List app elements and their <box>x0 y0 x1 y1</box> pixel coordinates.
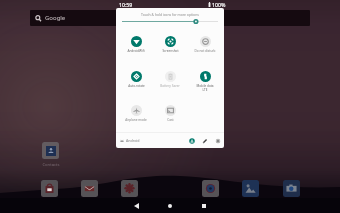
button[interactable]: Recents <box>187 198 221 213</box>
button[interactable]: Airplane mode <box>120 105 152 122</box>
button[interactable]: App <box>242 180 259 197</box>
staticText: AndroidWifi <box>127 49 145 53</box>
button[interactable]: Contacts <box>35 142 66 168</box>
button[interactable]: Home <box>153 198 187 213</box>
staticText: Do not disturb <box>194 49 216 53</box>
staticText: Touch & hold icons for more options <box>116 12 224 17</box>
button[interactable]: Back <box>119 198 153 213</box>
button[interactable]: App <box>81 180 98 197</box>
staticText: Screenshot <box>162 49 179 53</box>
button[interactable]: User <box>187 136 197 146</box>
staticText: 100% <box>212 1 226 8</box>
button[interactable]: Screenshot <box>154 36 186 53</box>
staticText: Contacts <box>42 162 60 168</box>
button[interactable]: Settings <box>213 136 223 146</box>
button[interactable]: Mobile data LTE <box>189 71 221 92</box>
button[interactable]: App <box>202 180 219 197</box>
button[interactable]: Cast <box>154 105 186 122</box>
button[interactable]: Google <box>30 10 310 26</box>
button[interactable]: App <box>41 180 58 197</box>
button[interactable]: AndroidWifi <box>120 36 152 53</box>
button[interactable]: Battery Saver <box>154 71 186 88</box>
button[interactable]: Auto-rotate <box>120 71 152 88</box>
staticText: Mobile data LTE <box>196 84 214 92</box>
button[interactable]: Edit <box>200 136 210 146</box>
staticText: Cast <box>167 118 174 122</box>
staticText: Google <box>45 14 66 22</box>
staticText: 10:59 <box>119 1 133 8</box>
staticText: Airplane mode <box>125 118 147 122</box>
button[interactable]: App <box>283 180 300 197</box>
button[interactable]: App <box>121 180 138 197</box>
staticText: Battery Saver <box>160 84 180 88</box>
staticText: Auto-rotate <box>128 84 145 88</box>
button[interactable]: Do not disturb <box>189 36 221 53</box>
staticText: Android <box>126 138 140 143</box>
